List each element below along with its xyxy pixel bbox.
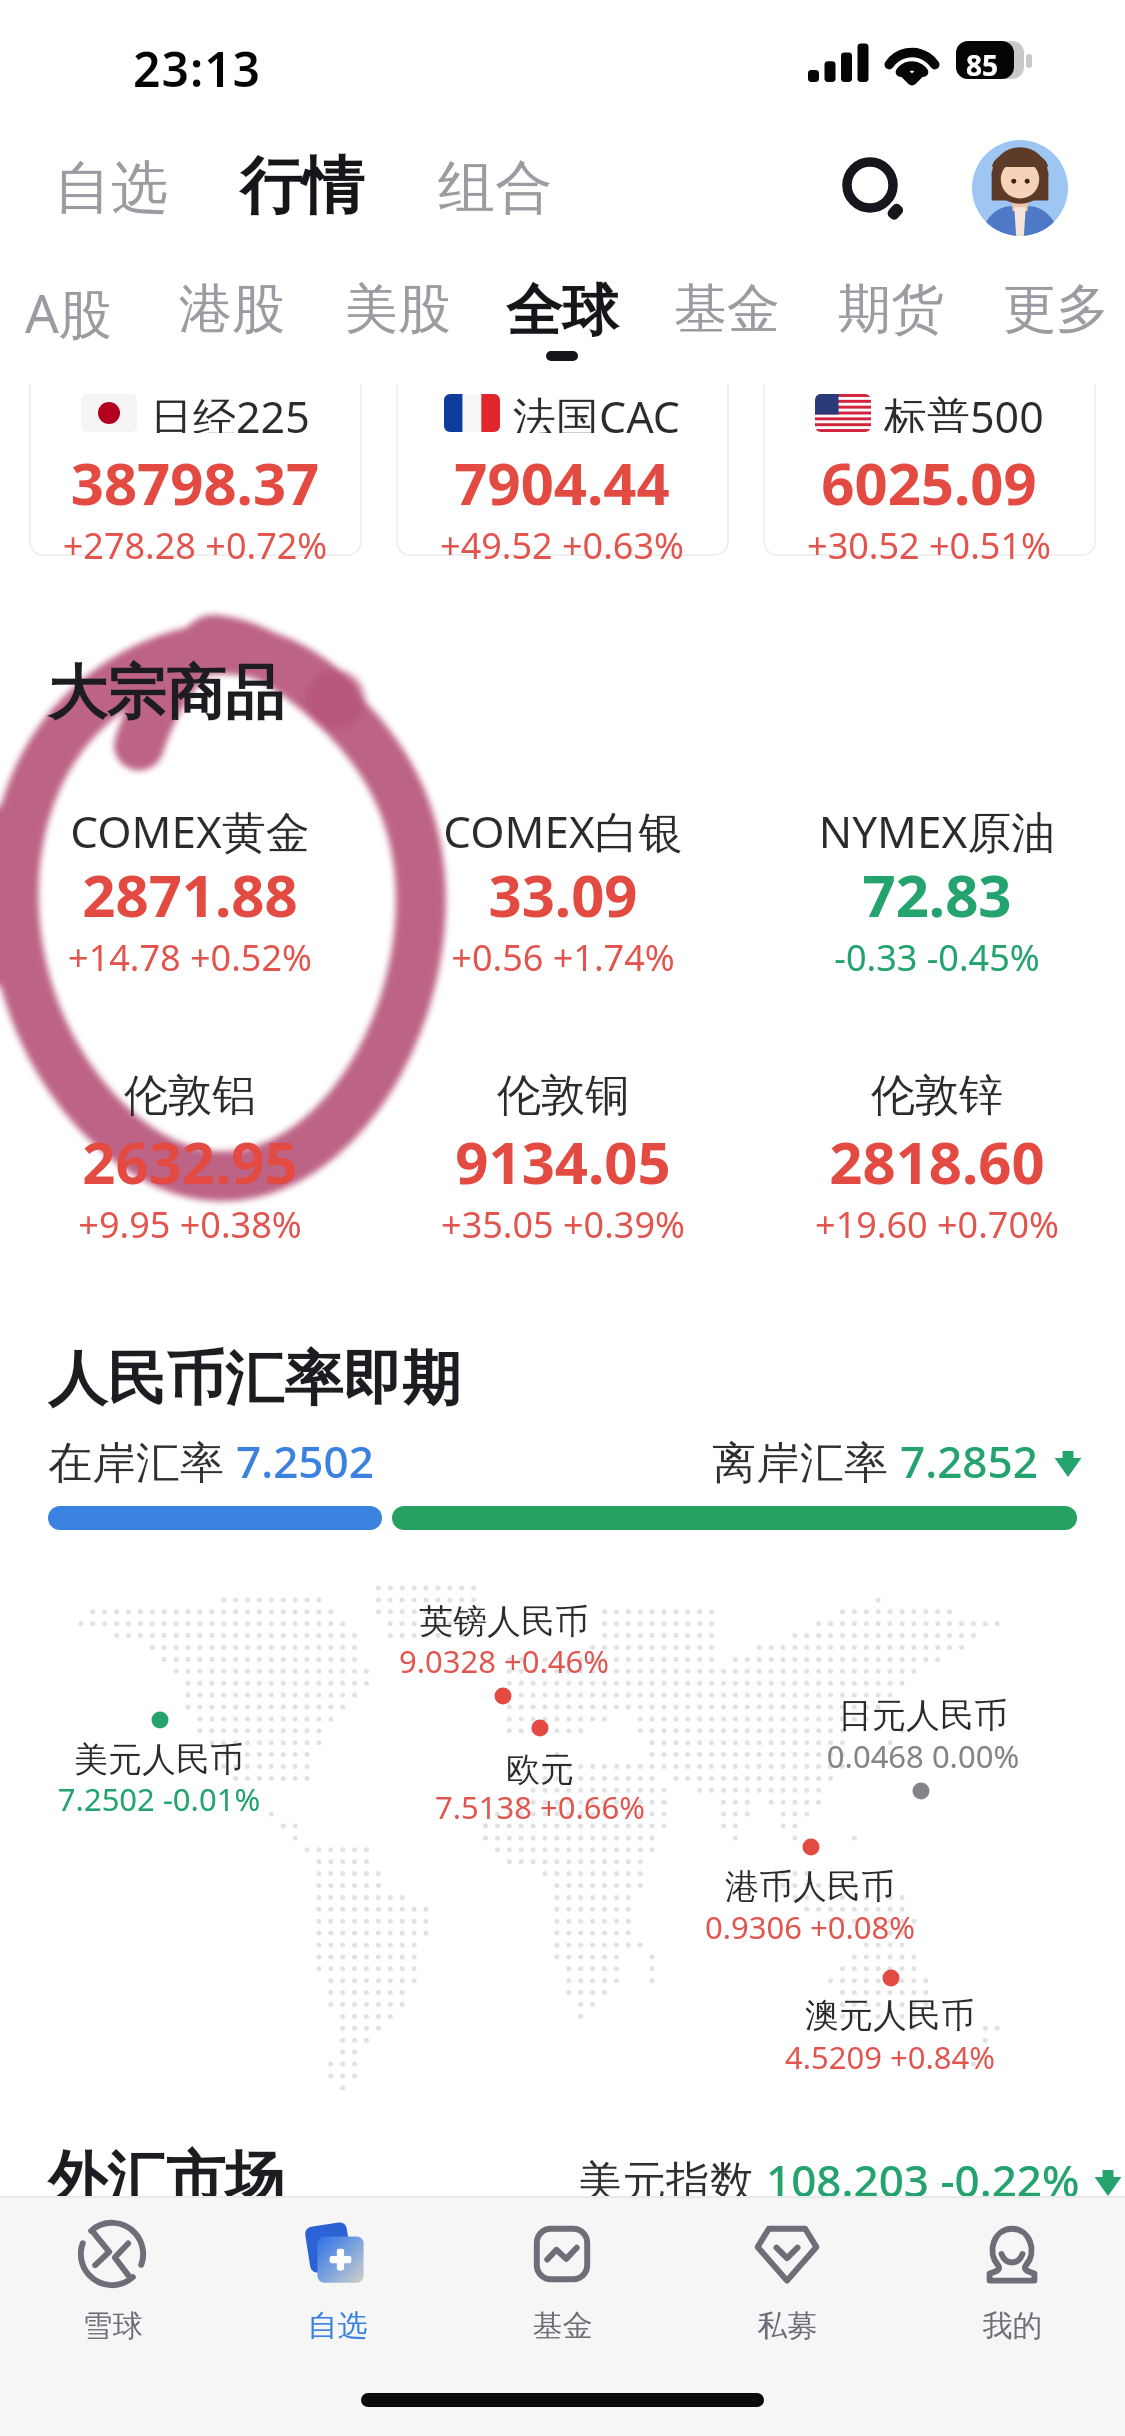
staticText: 7.2852 [900, 1431, 1038, 1491]
staticText: 日经225 [150, 387, 310, 433]
staticText: 7904.44 [397, 443, 727, 522]
button[interactable]: 美元指数 [578, 2150, 1124, 2210]
staticText: 自选 [225, 2307, 450, 2345]
staticText: 0.9306 +0.08% [600, 1906, 1020, 1948]
button[interactable] [225, 2200, 450, 2360]
staticText: 人民币汇率即期 [48, 1342, 461, 1416]
staticText: 0.0468 0.00% [713, 1735, 1125, 1777]
staticText: +0.56 +1.74% [383, 933, 743, 982]
staticText: 伦敦锌 [757, 1068, 1117, 1123]
staticText: 7.5138 +0.66% [330, 1786, 750, 1828]
button[interactable]: 更多 [990, 276, 1122, 372]
staticText: -0.33 -0.45% [757, 933, 1117, 982]
button[interactable]: Profile [972, 140, 1068, 236]
staticText: 美元指数 [578, 2150, 766, 2210]
staticText: 6025.09 [764, 443, 1094, 522]
button[interactable] [680, 1985, 1100, 2085]
button[interactable]: A股 [2, 276, 134, 372]
button[interactable]: 组合 [430, 144, 560, 232]
staticText: 港币人民币 [600, 1865, 1020, 1908]
button[interactable] [450, 2200, 675, 2360]
button[interactable] [10, 791, 370, 991]
staticText: 85 [966, 46, 999, 84]
staticText: 108.203 -0.22% [766, 2150, 1080, 2210]
staticText: 英镑人民币 [294, 1600, 714, 1643]
button[interactable]: 全球 [496, 276, 628, 372]
staticText: 法国CAC [513, 387, 680, 433]
staticText: 7.2502 -0.01% [0, 1778, 369, 1820]
staticText: A股 [25, 276, 112, 348]
button[interactable] [757, 791, 1117, 991]
button[interactable] [330, 1739, 750, 1839]
staticText: 基金 [450, 2307, 675, 2345]
staticText: +9.95 +0.38% [10, 1200, 370, 1249]
staticText: 澳元人民币 [680, 1994, 1100, 2037]
staticText: 港股 [179, 276, 285, 343]
staticText: 美元人民币 [0, 1738, 369, 1781]
button[interactable]: 离岸汇率 [712, 1431, 1084, 1491]
button[interactable] [10, 1058, 370, 1258]
staticText: 私募 [675, 2307, 900, 2345]
button[interactable] [900, 2200, 1125, 2360]
button[interactable] [0, 2200, 225, 2360]
staticText: 7.2502 [236, 1431, 374, 1491]
staticText: 美股 [345, 276, 451, 343]
staticText: 33.09 [383, 855, 743, 934]
staticText: 自选 [54, 152, 168, 224]
button[interactable] [763, 384, 1096, 556]
staticText: 行情 [240, 147, 364, 225]
staticText: +19.60 +0.70% [757, 1200, 1117, 1249]
staticText: COMEX白银 [383, 801, 743, 861]
staticText: +30.52 +0.51% [764, 521, 1094, 570]
staticText: 期货 [838, 276, 944, 343]
staticText: 雪球 [0, 2307, 225, 2345]
staticText: 伦敦铜 [383, 1068, 743, 1123]
staticText: 9134.05 [383, 1122, 743, 1201]
staticText: 全球 [506, 276, 618, 347]
staticText: 标普500 [884, 387, 1044, 433]
staticText: 23:13 [133, 36, 262, 101]
button[interactable] [600, 1856, 1020, 1956]
button[interactable]: 在岸汇率 [48, 1431, 374, 1491]
button[interactable]: 港股 [166, 276, 298, 372]
staticText: +35.05 +0.39% [383, 1200, 743, 1249]
staticText: 我的 [900, 2307, 1125, 2345]
staticText: +278.28 +0.72% [30, 521, 360, 570]
button[interactable] [713, 1685, 1125, 1785]
staticText: 组合 [438, 152, 552, 224]
button[interactable]: 自选 [46, 144, 176, 232]
staticText: +14.78 +0.52% [10, 933, 370, 982]
button[interactable]: 基金 [661, 276, 793, 372]
staticText: 在岸汇率 [48, 1431, 236, 1491]
button[interactable] [675, 2200, 900, 2360]
staticText: 大宗商品 [48, 656, 284, 730]
staticText: 更多 [1003, 276, 1109, 343]
button[interactable] [294, 1591, 714, 1691]
button[interactable] [396, 384, 729, 556]
button[interactable] [383, 1058, 743, 1258]
staticText: COMEX黄金 [10, 801, 370, 861]
button[interactable] [29, 384, 362, 556]
staticText: 离岸汇率 [712, 1431, 900, 1491]
staticText: NYMEX原油 [757, 801, 1117, 861]
staticText: 基金 [674, 276, 780, 343]
staticText: 2632.95 [10, 1122, 370, 1201]
staticText: 外汇市场 [48, 2142, 284, 2216]
staticText: 38798.37 [30, 443, 360, 522]
staticText: 欧元 [330, 1748, 750, 1791]
staticText: 9.0328 +0.46% [294, 1640, 714, 1682]
staticText: 日元人民币 [713, 1694, 1125, 1737]
button[interactable]: Search [826, 142, 916, 232]
staticText: 伦敦铝 [10, 1068, 370, 1123]
button[interactable] [0, 1729, 369, 1829]
button[interactable]: 行情 [232, 139, 372, 233]
staticText: 2871.88 [10, 855, 370, 934]
button[interactable]: 美股 [332, 276, 464, 372]
button[interactable] [757, 1058, 1117, 1258]
staticText: 72.83 [757, 855, 1117, 934]
staticText: +49.52 +0.63% [397, 521, 727, 570]
button[interactable]: 期货 [825, 276, 957, 372]
staticText: 4.5209 +0.84% [680, 2036, 1100, 2078]
staticText: 2818.60 [757, 1122, 1117, 1201]
button[interactable] [383, 791, 743, 991]
